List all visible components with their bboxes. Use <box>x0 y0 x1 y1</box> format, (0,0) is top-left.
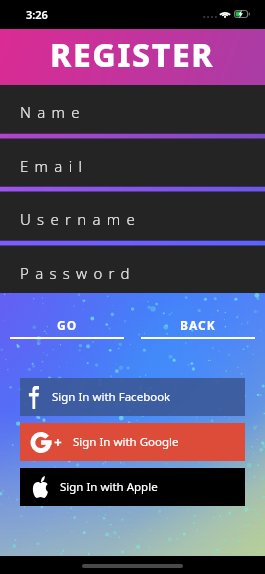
staticText: REGISTER <box>50 33 215 77</box>
staticText: Sign In with Apple <box>60 479 158 495</box>
button[interactable]: Name <box>0 85 265 133</box>
staticText: GO <box>57 317 78 333</box>
button[interactable]: GO <box>10 317 124 339</box>
button[interactable]: Username <box>0 192 265 240</box>
staticText: Username <box>20 209 142 229</box>
staticText: Sign In with Google <box>73 434 179 450</box>
staticText: Name <box>20 102 86 122</box>
staticText: Email <box>20 156 89 176</box>
button[interactable]: Sign In with Facebook <box>20 378 245 416</box>
staticText: BACK <box>180 317 216 333</box>
staticText: Sign In with Facebook <box>52 389 171 405</box>
button[interactable]: Email <box>0 139 265 186</box>
button[interactable]: BACK <box>141 317 255 339</box>
button[interactable]: Sign In with Google <box>20 423 245 461</box>
staticText: Password <box>20 263 136 283</box>
button[interactable]: Sign In with Apple <box>20 468 245 506</box>
staticText: 3:26 <box>26 7 48 22</box>
button[interactable]: Password <box>0 246 265 293</box>
